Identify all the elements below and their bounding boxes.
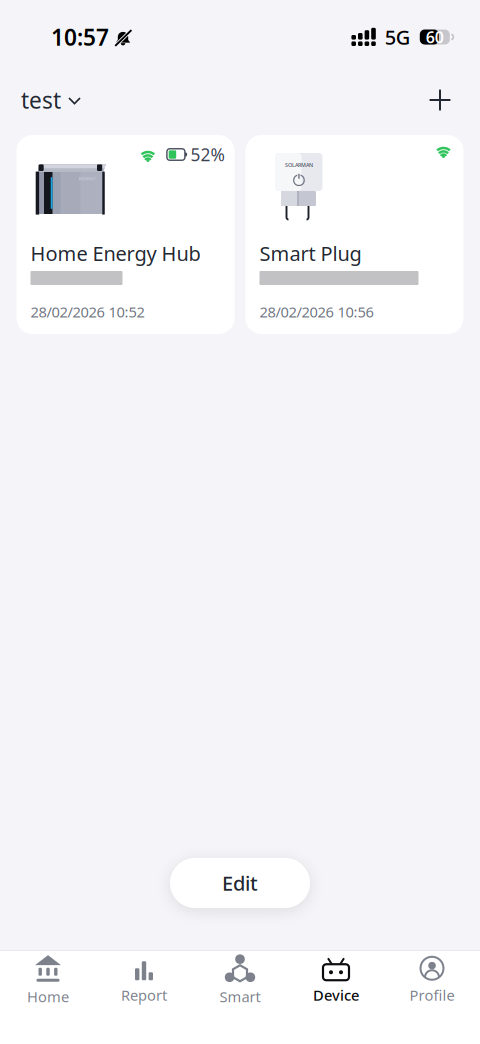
button[interactable]: SOLARMAN bbox=[245, 135, 463, 334]
button[interactable]: Device bbox=[288, 947, 384, 1009]
staticText: 28/02/2026 10:52 bbox=[30, 302, 144, 321]
staticText: 60 bbox=[426, 26, 444, 48]
staticText: Smart Plug bbox=[259, 240, 361, 267]
staticText: 52% bbox=[190, 143, 224, 166]
button[interactable]: Edit bbox=[170, 858, 310, 908]
staticText: Smart bbox=[219, 987, 260, 1006]
button[interactable]: Smart bbox=[192, 946, 288, 1010]
staticText: Home bbox=[27, 987, 69, 1006]
button[interactable]: Report bbox=[96, 947, 192, 1009]
staticText: 10:57 bbox=[51, 22, 109, 52]
button[interactable]: 52% bbox=[16, 135, 234, 334]
staticText: SOLARMAN bbox=[285, 161, 313, 169]
staticText: Device bbox=[313, 985, 359, 1005]
staticText: 5G bbox=[385, 24, 411, 50]
staticText: Report bbox=[121, 985, 167, 1005]
button[interactable]: Home bbox=[0, 946, 96, 1010]
button[interactable]: Profile bbox=[384, 947, 480, 1009]
staticText: 28/02/2026 10:56 bbox=[259, 302, 373, 321]
staticText: Edit bbox=[222, 870, 258, 896]
button[interactable]: Add device bbox=[423, 83, 457, 117]
staticText: Profile bbox=[409, 985, 454, 1005]
staticText: Home Energy Hub bbox=[30, 240, 200, 267]
button[interactable]: test bbox=[21, 76, 91, 124]
staticText: INDIVOLT bbox=[78, 176, 95, 181]
staticText: test bbox=[21, 85, 61, 115]
